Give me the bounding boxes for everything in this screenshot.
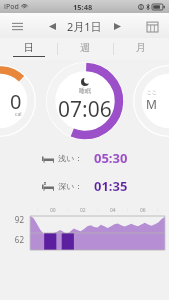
staticText: cal bbox=[15, 111, 22, 118]
button[interactable]: 週 bbox=[57, 38, 113, 60]
staticText: 62 bbox=[6, 234, 24, 245]
staticText: 06 bbox=[140, 207, 146, 214]
staticText: 深い： bbox=[58, 181, 83, 191]
staticText: 07:06 bbox=[58, 95, 112, 124]
staticText: 00 bbox=[50, 207, 56, 214]
staticText: ここ bbox=[147, 89, 158, 95]
staticText: 日 bbox=[24, 41, 34, 54]
staticText: 15:48 bbox=[73, 2, 93, 12]
button[interactable]: 浅い： bbox=[0, 149, 169, 167]
staticText: · bbox=[37, 207, 39, 212]
staticText: 月 bbox=[136, 41, 146, 54]
staticText: М bbox=[146, 96, 157, 112]
button[interactable]: Next day bbox=[107, 16, 127, 36]
staticText: 週 bbox=[80, 41, 90, 54]
button[interactable]: 睡眠 bbox=[46, 62, 124, 140]
staticText: 01:35 bbox=[94, 177, 128, 195]
button[interactable]: ここ bbox=[133, 65, 169, 137]
button[interactable]: Menu bbox=[6, 15, 28, 37]
staticText: 92 bbox=[6, 214, 24, 225]
staticText: 04 bbox=[110, 207, 116, 214]
button[interactable]: Previous day bbox=[42, 16, 62, 36]
staticText: iPod bbox=[4, 2, 19, 12]
staticText: 02 bbox=[80, 207, 86, 214]
staticText: 2月1日 bbox=[67, 19, 102, 34]
button[interactable]: 0 bbox=[0, 65, 36, 137]
button[interactable] bbox=[30, 216, 165, 250]
button[interactable]: Calendar bbox=[141, 15, 163, 37]
staticText: 睡眠 bbox=[79, 87, 91, 95]
staticText: · bbox=[97, 207, 99, 212]
staticText: · bbox=[157, 207, 159, 212]
staticText: 浅い： bbox=[58, 153, 83, 163]
staticText: · bbox=[127, 207, 129, 212]
button[interactable]: 深い： bbox=[0, 177, 169, 195]
button[interactable]: 日 bbox=[0, 38, 57, 60]
button[interactable]: 月 bbox=[113, 38, 169, 60]
staticText: 0 bbox=[10, 88, 22, 115]
staticText: 05:30 bbox=[94, 149, 128, 167]
staticText: · bbox=[67, 207, 69, 212]
